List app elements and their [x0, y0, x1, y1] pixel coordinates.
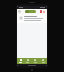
button[interactable]: Notifications [39, 10, 46, 13]
button[interactable]: Menu [17, 9, 22, 14]
button[interactable]: Home [17, 58, 24, 64]
button[interactable]: Reply [17, 14, 47, 23]
button[interactable]: Activity [31, 58, 39, 64]
button[interactable]: Profile [39, 58, 47, 64]
button[interactable]: Search [24, 58, 31, 64]
button[interactable]: Filter [25, 10, 36, 13]
